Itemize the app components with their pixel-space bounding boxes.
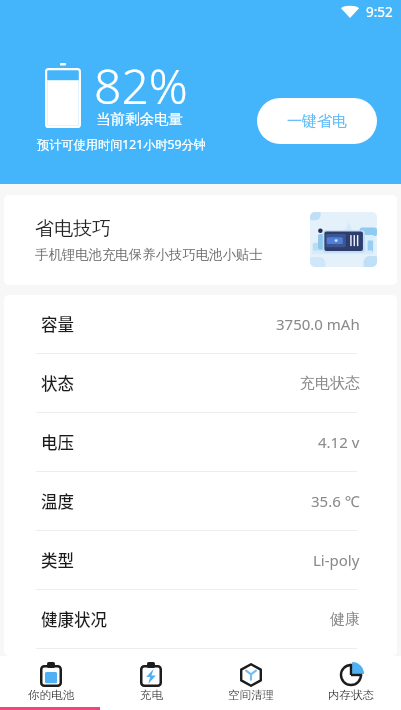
staticText: 82% bbox=[94, 53, 188, 118]
staticText: 容量 bbox=[41, 312, 74, 336]
staticText: 充电状态 bbox=[300, 374, 360, 393]
staticText: Li-poly bbox=[313, 550, 360, 570]
staticText: 一键省电 bbox=[287, 112, 347, 131]
staticText: 健康 bbox=[330, 610, 360, 629]
button[interactable]: Memory status bbox=[301, 656, 401, 708]
button[interactable]: 温度 bbox=[4, 472, 397, 530]
staticText: 省电技巧 bbox=[35, 217, 111, 241]
staticText: 温度 bbox=[41, 489, 74, 513]
staticText: 空间清理 bbox=[228, 688, 274, 702]
button[interactable]: Your battery bbox=[0, 656, 101, 708]
staticText: 4.12 v bbox=[318, 432, 360, 452]
button[interactable]: 省电技巧 bbox=[4, 195, 397, 285]
button[interactable]: 状态 bbox=[4, 354, 397, 412]
staticText: 充电 bbox=[140, 688, 163, 702]
button[interactable]: 类型 bbox=[4, 531, 397, 589]
staticText: 类型 bbox=[41, 548, 74, 572]
button[interactable]: Clean storage bbox=[201, 656, 301, 708]
button[interactable]: 电压 bbox=[4, 413, 397, 471]
button[interactable]: 健康状况 bbox=[4, 590, 397, 648]
button[interactable]: Charging bbox=[101, 656, 201, 708]
staticText: 预计可使用时间121小时59分钟 bbox=[37, 136, 206, 153]
staticText: 当前剩余电量 bbox=[96, 110, 183, 128]
staticText: 电压 bbox=[41, 430, 74, 454]
staticText: 手机锂电池充电保养小技巧电池小贴士 bbox=[35, 246, 263, 263]
staticText: 你的电池 bbox=[28, 688, 74, 702]
staticText: 35.6 ℃ bbox=[311, 491, 360, 511]
button[interactable]: 一键省电 bbox=[257, 98, 377, 144]
button[interactable]: 容量 bbox=[4, 295, 397, 353]
staticText: 内存状态 bbox=[328, 688, 374, 702]
staticText: 状态 bbox=[41, 371, 74, 395]
staticText: 3750.0 mAh bbox=[276, 314, 360, 334]
staticText: 9:52 bbox=[366, 3, 393, 21]
staticText: 健康状况 bbox=[41, 607, 107, 631]
